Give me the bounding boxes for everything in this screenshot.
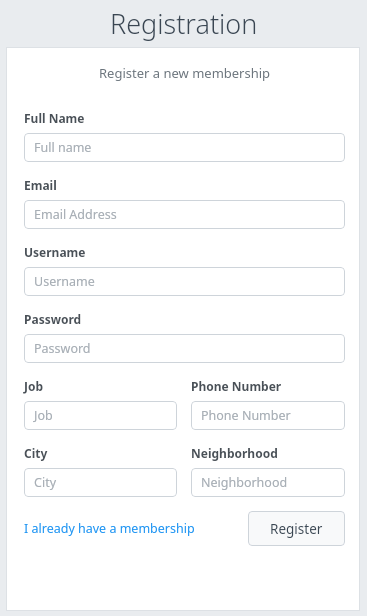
staticText: Phone Number	[201, 407, 291, 424]
button[interactable]: Password	[24, 334, 345, 363]
staticText: Job	[24, 378, 44, 394]
button[interactable]: Neighborhood	[191, 468, 345, 497]
staticText: Neighborhood	[201, 474, 288, 491]
button[interactable]: Phone Number	[191, 401, 345, 430]
staticText: Username	[24, 244, 86, 260]
staticText: Register a new membership	[99, 64, 271, 82]
staticText: I already have a membership	[24, 520, 195, 537]
staticText: Username	[34, 273, 95, 290]
staticText: Phone Number	[191, 378, 282, 394]
staticText: Full name	[34, 139, 92, 156]
staticText: City	[34, 474, 57, 491]
button[interactable]: Email Address	[24, 200, 345, 229]
staticText: Password	[24, 311, 82, 327]
button[interactable]: Register	[248, 511, 345, 546]
staticText: Registration	[110, 5, 258, 42]
staticText: Job	[34, 407, 53, 424]
button[interactable]: Job	[24, 401, 177, 430]
button[interactable]: Username	[24, 267, 345, 296]
button[interactable]: Full name	[24, 133, 345, 162]
button[interactable]: I already have a membership	[24, 516, 195, 541]
staticText: Email	[24, 177, 57, 193]
staticText: Email Address	[34, 206, 117, 223]
staticText: Full Name	[24, 110, 85, 126]
staticText: Register	[270, 520, 323, 538]
staticText: City	[24, 445, 48, 461]
staticText: Password	[34, 340, 91, 357]
button[interactable]: City	[24, 468, 177, 497]
staticText: Neighborhood	[191, 445, 278, 461]
